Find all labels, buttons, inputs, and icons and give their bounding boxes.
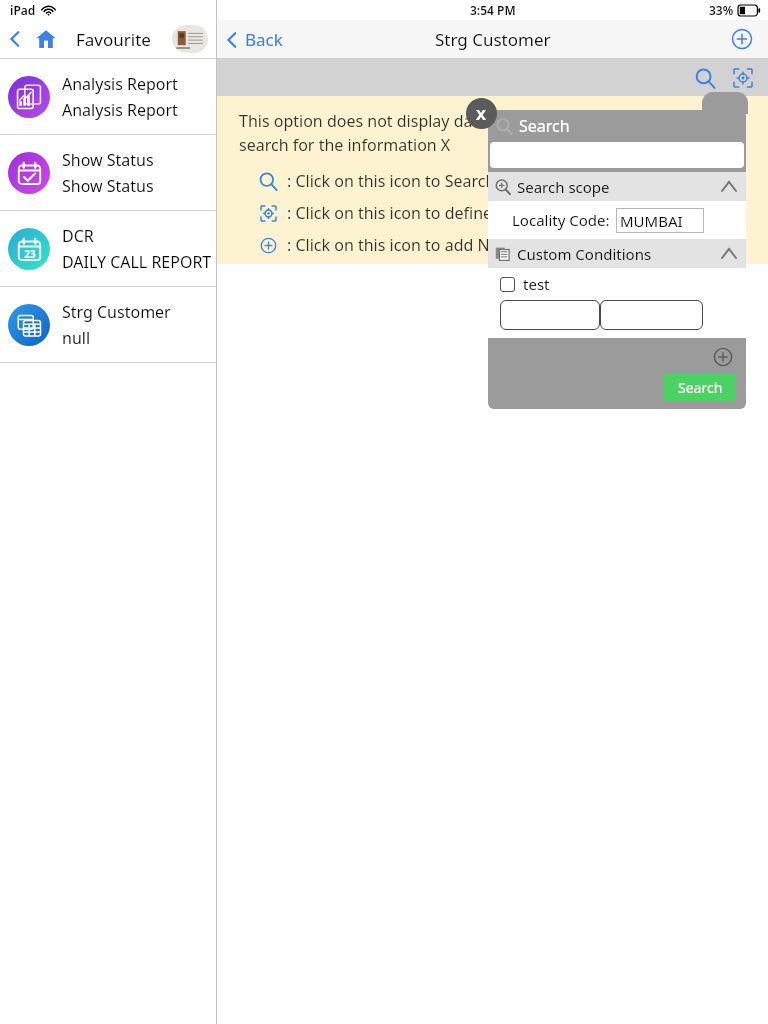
staticText: 33% <box>709 2 734 18</box>
staticText: Strg Customer <box>62 301 171 323</box>
staticText: Custom Conditions <box>517 244 652 264</box>
button[interactable] <box>600 300 703 330</box>
button[interactable]: Search <box>664 374 736 401</box>
button[interactable]: Profile <box>172 25 208 53</box>
button[interactable]: 23 <box>0 211 216 286</box>
button[interactable]: Define scope <box>726 61 760 95</box>
staticText: This option does not display data by def… <box>239 110 754 156</box>
staticText: Favourite <box>76 28 151 51</box>
button[interactable]: Add condition <box>710 344 736 370</box>
staticText: X <box>476 104 487 124</box>
staticText: Strg Customer <box>435 28 551 51</box>
button[interactable]: test <box>500 274 550 294</box>
staticText: null <box>62 327 91 349</box>
staticText: Locality Code: <box>512 210 610 230</box>
staticText: Search scope <box>517 177 610 197</box>
button[interactable]: Home <box>30 23 62 55</box>
staticText: 23 <box>24 247 36 261</box>
button[interactable]: Close <box>466 98 497 129</box>
staticText: DCR <box>62 225 94 247</box>
staticText: 3:54 PM <box>470 2 516 18</box>
button[interactable] <box>490 142 744 168</box>
staticText: Analysis Report <box>62 73 178 95</box>
staticText: MUMBAI <box>620 211 683 231</box>
button[interactable]: Analysis Report <box>0 59 216 134</box>
button[interactable]: Search scope <box>488 172 746 201</box>
button[interactable]: Search <box>688 61 722 95</box>
button[interactable]: Custom Conditions <box>488 239 746 268</box>
button[interactable]: Show Status <box>0 135 216 210</box>
button[interactable]: MUMBAI <box>616 208 704 233</box>
button[interactable]: Back <box>223 28 283 51</box>
staticText: Show Status <box>62 175 154 197</box>
staticText: : Click on this icon to define <box>287 202 493 224</box>
staticText: : Click on this icon to add N <box>287 234 490 256</box>
staticText: Back <box>245 28 283 51</box>
button[interactable]: Back <box>0 24 30 54</box>
staticText: test <box>523 274 550 294</box>
staticText: Search <box>519 115 570 137</box>
button[interactable] <box>500 300 600 330</box>
staticText: Search <box>678 378 723 397</box>
staticText: DAILY CALL REPORT <box>62 251 212 273</box>
button[interactable]: Strg Customer <box>0 287 216 362</box>
staticText: Analysis Report <box>62 99 178 121</box>
staticText: iPad <box>10 2 36 18</box>
staticText: : Click on this icon to Search <box>287 170 496 192</box>
button[interactable]: Add <box>726 23 758 55</box>
staticText: Show Status <box>62 149 154 171</box>
